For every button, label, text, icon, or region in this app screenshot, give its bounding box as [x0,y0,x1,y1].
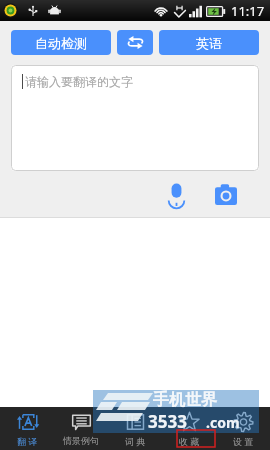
button[interactable]: 词 典 [108,407,162,450]
staticText: 情景例句 [63,435,99,446]
staticText: 手机世界 [153,390,217,410]
button[interactable]: Camera input [210,178,242,210]
staticText: 翻 译 [17,435,38,447]
button[interactable]: 英语 [159,30,259,55]
button[interactable]: 情景例句 [54,407,108,450]
button[interactable]: Voice input [160,178,192,210]
button[interactable]: 收 藏 [162,407,216,450]
staticText: 设 置 [233,435,254,447]
button[interactable]: Swap languages [117,30,153,55]
staticText: 自动检测 [35,35,87,51]
button[interactable]: 设 置 [216,407,270,450]
staticText: 3533 [148,410,187,433]
button[interactable]: 请输入要翻译的文字 [11,65,259,171]
button[interactable]: 自动检测 [11,30,111,55]
staticText: 词 典 [125,435,146,447]
staticText: 请输入要翻译的文字 [25,74,133,89]
button[interactable]: 翻 译 [0,407,54,450]
staticText: .com [206,413,240,432]
staticText: 收 藏 [179,435,200,447]
staticText: 11:17 [231,2,265,20]
staticText: 英语 [196,35,222,51]
